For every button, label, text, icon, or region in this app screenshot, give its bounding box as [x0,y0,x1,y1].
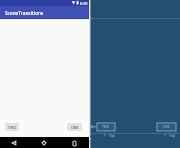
staticText: ONE [163,125,170,129]
staticText: 16dp [109,134,116,138]
button[interactable]: Recents [69,138,79,148]
staticText: 8:00 [80,1,88,6]
staticText: ONE [71,125,79,130]
button[interactable]: Back [9,138,19,148]
staticText: TWO [102,125,110,129]
button[interactable]: TWO [5,123,19,131]
button[interactable]: ONE [157,123,176,131]
staticText: TWO [8,125,16,130]
button[interactable]: Home [39,138,49,148]
button[interactable]: TWO [97,123,115,131]
staticText: SceneTransitions [5,10,44,16]
staticText: 16dp [169,134,176,138]
button[interactable]: ONE [67,123,82,131]
